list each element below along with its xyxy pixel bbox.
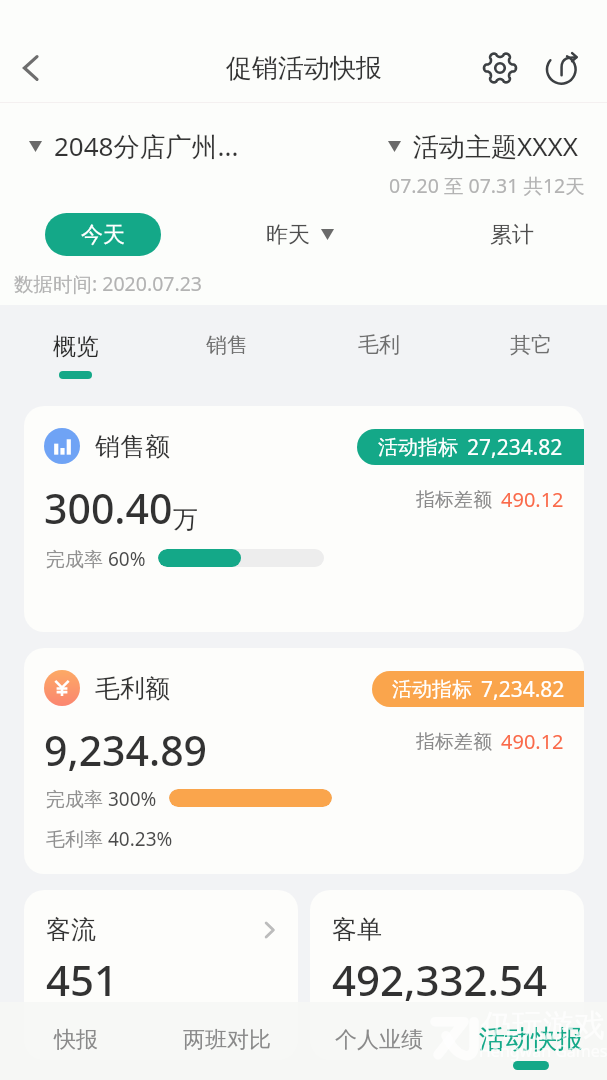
button[interactable]: 两班对比 xyxy=(151,1002,303,1080)
staticText: 9,234.89 xyxy=(44,722,208,778)
button[interactable]: 其它 xyxy=(455,305,607,390)
staticText: 7,234.82 xyxy=(481,675,565,704)
staticText: 客单 xyxy=(332,914,382,945)
staticText: 活动快报 xyxy=(479,1023,583,1056)
staticText: 27,234.82 xyxy=(467,433,563,462)
staticText: 40.23% xyxy=(108,826,173,852)
button[interactable]: 毛利 xyxy=(303,305,455,390)
staticText: 活动指标 xyxy=(378,435,458,460)
staticText: 其它 xyxy=(510,332,552,358)
staticText: 今天 xyxy=(81,221,125,249)
button[interactable]: 客流 xyxy=(24,890,298,1060)
button[interactable]: 个人业绩 xyxy=(303,1002,455,1080)
button[interactable]: 活动快报 xyxy=(455,1002,607,1080)
button[interactable]: 今天 xyxy=(45,213,161,256)
staticText: 300% xyxy=(108,786,157,810)
staticText: 快报 xyxy=(54,1026,98,1054)
staticText: 活动主题XXXX xyxy=(413,128,578,164)
staticText: 完成率 xyxy=(46,786,108,810)
button[interactable]: 活动主题XXXX xyxy=(380,124,586,168)
button[interactable]: 2048分店广州... xyxy=(21,124,247,168)
button[interactable]: 昨天 xyxy=(254,213,346,256)
staticText: 300.40 xyxy=(44,480,173,536)
button[interactable]: 毛利额 xyxy=(24,648,584,874)
staticText: 促销活动快报 xyxy=(226,52,382,85)
staticText: 07.20 至 07.31 共12天 xyxy=(389,172,585,199)
staticText: 2048分店广州... xyxy=(54,128,239,164)
staticText: 销售额 xyxy=(95,431,170,462)
staticText: 客流 xyxy=(46,914,96,945)
staticText: 昨天 xyxy=(266,221,310,249)
button[interactable]: 概览 xyxy=(0,305,151,390)
button[interactable]: Settings xyxy=(477,45,523,91)
staticText: Hengwan Games xyxy=(479,1040,607,1062)
staticText: 490.12 xyxy=(501,728,564,755)
staticText: 个人业绩 xyxy=(335,1026,423,1054)
staticText: 毛利率 xyxy=(46,826,108,852)
staticText: 指标差额 xyxy=(416,730,492,754)
staticText: 数据时间: 2020.07.23 xyxy=(14,270,202,297)
staticText: 万 xyxy=(173,504,198,535)
staticText: 451 xyxy=(46,951,119,1008)
button[interactable]: Back xyxy=(3,40,59,96)
staticText: 两班对比 xyxy=(183,1026,271,1054)
staticText: 指标差额 xyxy=(416,488,492,512)
button[interactable]: 客单 xyxy=(310,890,584,1060)
button[interactable]: Share xyxy=(540,45,586,91)
staticText: 490.12 xyxy=(501,486,564,513)
staticText: 完成率 xyxy=(46,546,108,570)
staticText: 累计 xyxy=(490,221,534,249)
staticText: 活动指标 xyxy=(392,677,472,702)
button[interactable]: 销售 xyxy=(151,305,303,390)
staticText: 概览 xyxy=(53,332,99,361)
button[interactable]: 销售额 xyxy=(24,406,584,632)
staticText: 492,332.54 xyxy=(332,951,548,1008)
staticText: 仍玩游戏 xyxy=(481,1006,605,1045)
staticText: 60% xyxy=(108,546,146,570)
button[interactable]: 快报 xyxy=(0,1002,151,1080)
staticText: 毛利 xyxy=(358,332,400,358)
staticText: 销售 xyxy=(206,332,248,358)
button[interactable]: 累计 xyxy=(478,213,546,256)
staticText: 毛利额 xyxy=(95,673,170,704)
